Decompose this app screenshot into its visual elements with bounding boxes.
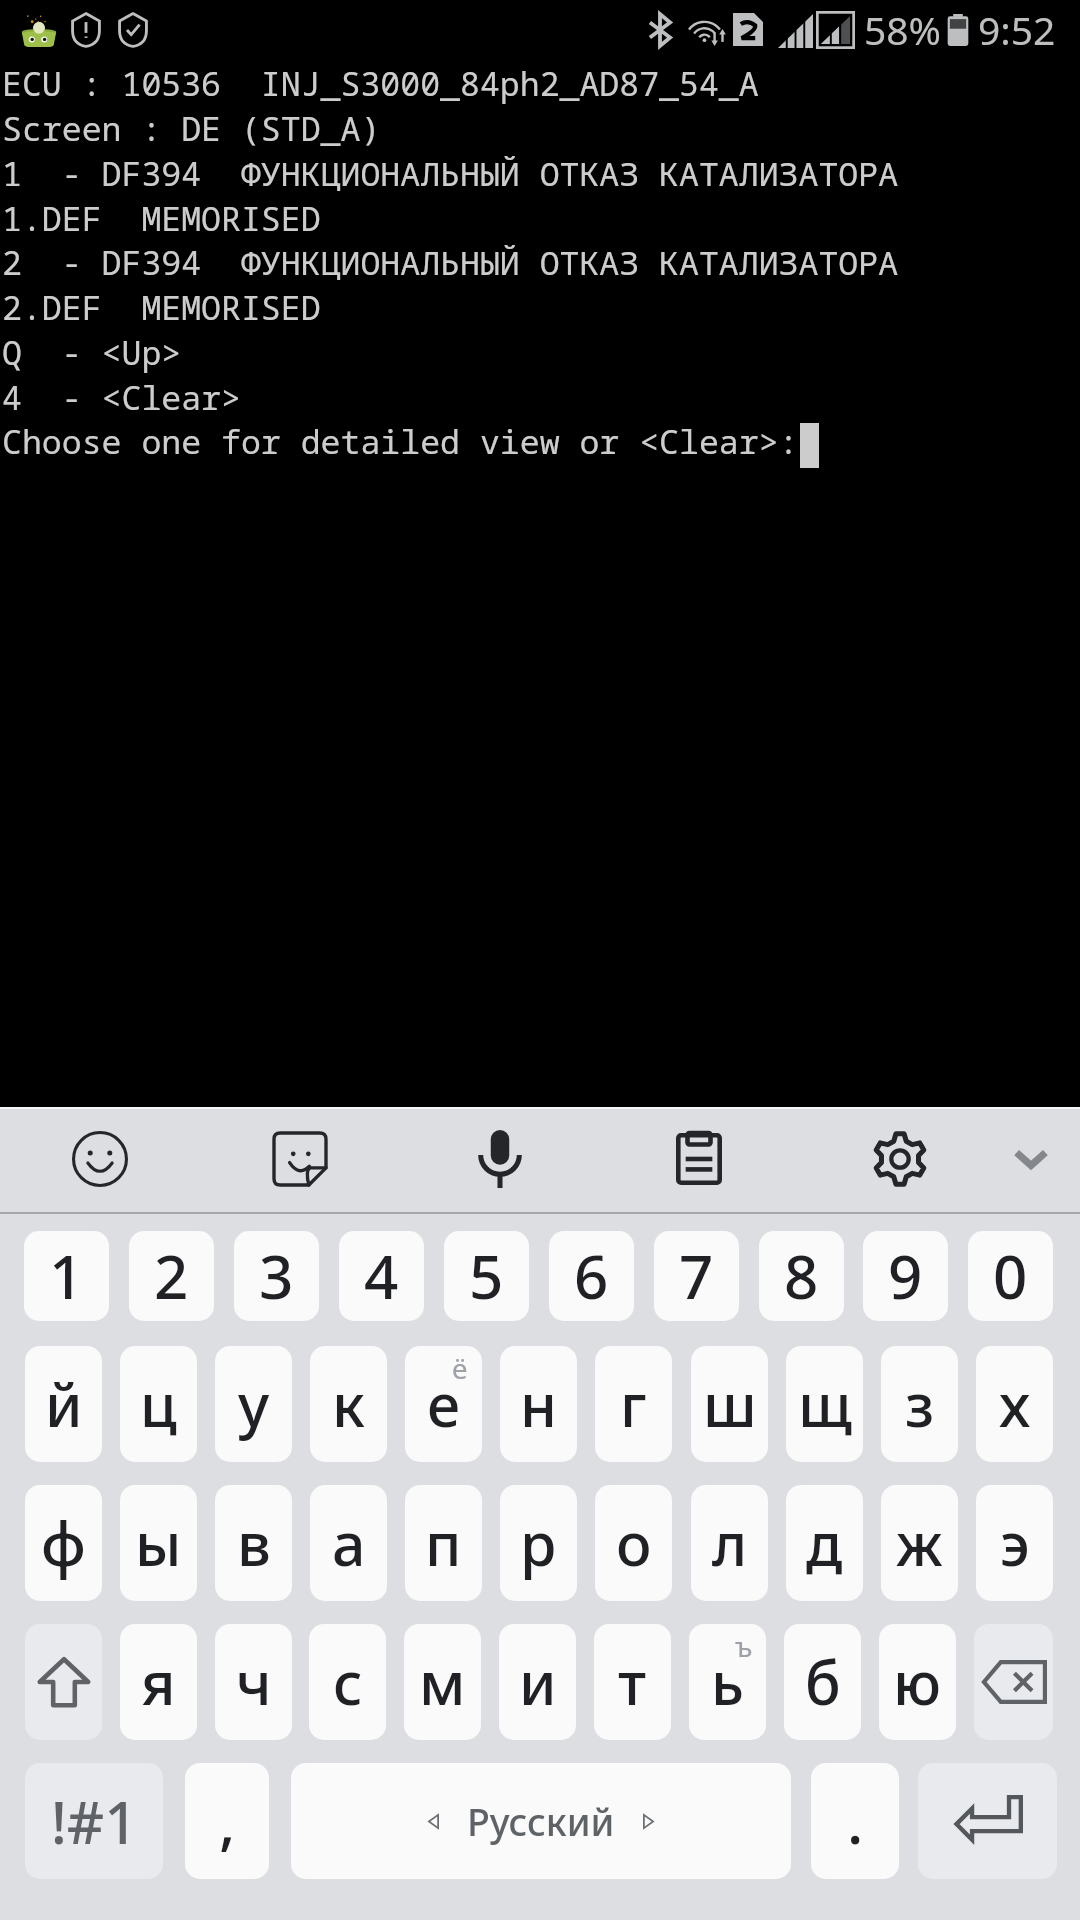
button[interactable]: Hide keyboard [979, 1107, 1080, 1211]
staticText: 9 [888, 1235, 923, 1317]
button[interactable]: Shift [25, 1624, 102, 1740]
button[interactable]: ю [879, 1624, 956, 1740]
button[interactable]: г [595, 1346, 672, 1462]
staticText: , [219, 1780, 236, 1862]
button[interactable]: е [405, 1346, 482, 1462]
button[interactable]: й [25, 1346, 102, 1462]
staticText: х [999, 1364, 1031, 1444]
button[interactable]: з [881, 1346, 958, 1462]
staticText: б [805, 1642, 841, 1722]
staticText: р [520, 1503, 557, 1583]
button[interactable]: р [500, 1485, 577, 1601]
button[interactable]: 7 [654, 1231, 739, 1321]
staticText: 1 [49, 1235, 84, 1317]
staticText: ё [452, 1349, 468, 1387]
staticText: ь [711, 1642, 744, 1722]
staticText: г [620, 1364, 647, 1444]
staticText: у [238, 1364, 270, 1444]
button[interactable]: и [499, 1624, 576, 1740]
staticText: 2 - DF394 ФУНКЦИОНАЛЬНЫЙ ОТКАЗ КАТАЛИЗАТ… [2, 240, 899, 285]
button[interactable]: , [185, 1763, 269, 1879]
button[interactable]: Voice input [448, 1107, 552, 1211]
button[interactable]: т [594, 1624, 671, 1740]
button[interactable]: н [500, 1346, 577, 1462]
button[interactable]: у [215, 1346, 292, 1462]
button[interactable]: 9 [863, 1231, 948, 1321]
button[interactable]: ц [120, 1346, 197, 1462]
button[interactable]: Space [291, 1763, 791, 1879]
staticText: а [332, 1503, 366, 1583]
staticText: 8 [784, 1235, 819, 1317]
button[interactable]: 2 [129, 1231, 214, 1321]
staticText: л [712, 1503, 748, 1583]
button[interactable]: в [215, 1485, 292, 1601]
staticText: Choose one for detailed view or <Clear>: [2, 419, 799, 464]
staticText: е [427, 1364, 461, 1444]
staticText: 5 [469, 1235, 504, 1317]
button[interactable]: Settings [848, 1107, 952, 1211]
button[interactable]: 6 [549, 1231, 634, 1321]
button[interactable]: щ [786, 1346, 863, 1462]
button[interactable]: 4 [339, 1231, 424, 1321]
button[interactable]: Terminal output [0, 0, 1080, 1107]
staticText: п [425, 1503, 462, 1583]
staticText: 2 [154, 1235, 189, 1317]
staticText: ш [703, 1364, 757, 1444]
button[interactable]: Enter [918, 1763, 1057, 1879]
button[interactable]: ы [120, 1485, 197, 1601]
button[interactable]: Clipboard [647, 1107, 751, 1211]
button[interactable]: !#1 [25, 1763, 163, 1879]
staticText: 1.DEF MEMORISED [2, 196, 321, 241]
button[interactable]: 8 [759, 1231, 844, 1321]
button[interactable]: ч [215, 1624, 292, 1740]
button[interactable]: 1 [24, 1231, 109, 1321]
button[interactable]: ж [881, 1485, 958, 1601]
staticText: ECU : 10536 INJ_S3000_84ph2_AD87_54_A [2, 61, 759, 106]
staticText: 4 - <Clear> [2, 375, 241, 420]
button[interactable]: ш [691, 1346, 768, 1462]
button[interactable]: с [309, 1624, 386, 1740]
button[interactable]: к [310, 1346, 387, 1462]
button[interactable]: Emoji [48, 1107, 152, 1211]
staticText: в [237, 1503, 271, 1583]
staticText: з [905, 1364, 935, 1444]
staticText: 58% [864, 3, 942, 56]
button[interactable]: 0 [968, 1231, 1053, 1321]
button[interactable]: ф [25, 1485, 102, 1601]
staticText: й [45, 1364, 83, 1444]
staticText: к [332, 1364, 365, 1444]
staticText: 0 [993, 1235, 1028, 1317]
staticText: щ [798, 1364, 852, 1444]
button[interactable]: м [404, 1624, 481, 1740]
staticText: ж [896, 1503, 943, 1583]
staticText: Screen : DE (STD_A) [2, 106, 381, 151]
button[interactable]: ь [689, 1624, 766, 1740]
button[interactable]: Backspace [974, 1624, 1053, 1740]
button[interactable]: 3 [234, 1231, 319, 1321]
staticText: ъ [735, 1627, 753, 1665]
staticText: м [419, 1642, 466, 1722]
staticText: о [616, 1503, 652, 1583]
staticText: д [806, 1503, 843, 1583]
staticText: 7 [679, 1235, 714, 1317]
staticText: 2.DEF MEMORISED [2, 285, 321, 330]
button[interactable]: . [811, 1763, 899, 1879]
staticText: 3 [259, 1235, 294, 1317]
staticText: ч [236, 1642, 272, 1722]
button[interactable]: я [120, 1624, 197, 1740]
button[interactable]: л [691, 1485, 768, 1601]
button[interactable]: д [786, 1485, 863, 1601]
button[interactable]: п [405, 1485, 482, 1601]
button[interactable]: б [784, 1624, 861, 1740]
button[interactable]: э [976, 1485, 1053, 1601]
button[interactable]: 5 [444, 1231, 529, 1321]
staticText: ы [135, 1503, 182, 1583]
button[interactable]: х [976, 1346, 1053, 1462]
staticText: ц [140, 1364, 177, 1444]
staticText: !#1 [51, 1782, 138, 1861]
staticText: н [520, 1364, 557, 1444]
staticText: с [333, 1642, 363, 1722]
button[interactable]: Stickers [248, 1107, 352, 1211]
button[interactable]: о [595, 1485, 672, 1601]
button[interactable]: а [310, 1485, 387, 1601]
